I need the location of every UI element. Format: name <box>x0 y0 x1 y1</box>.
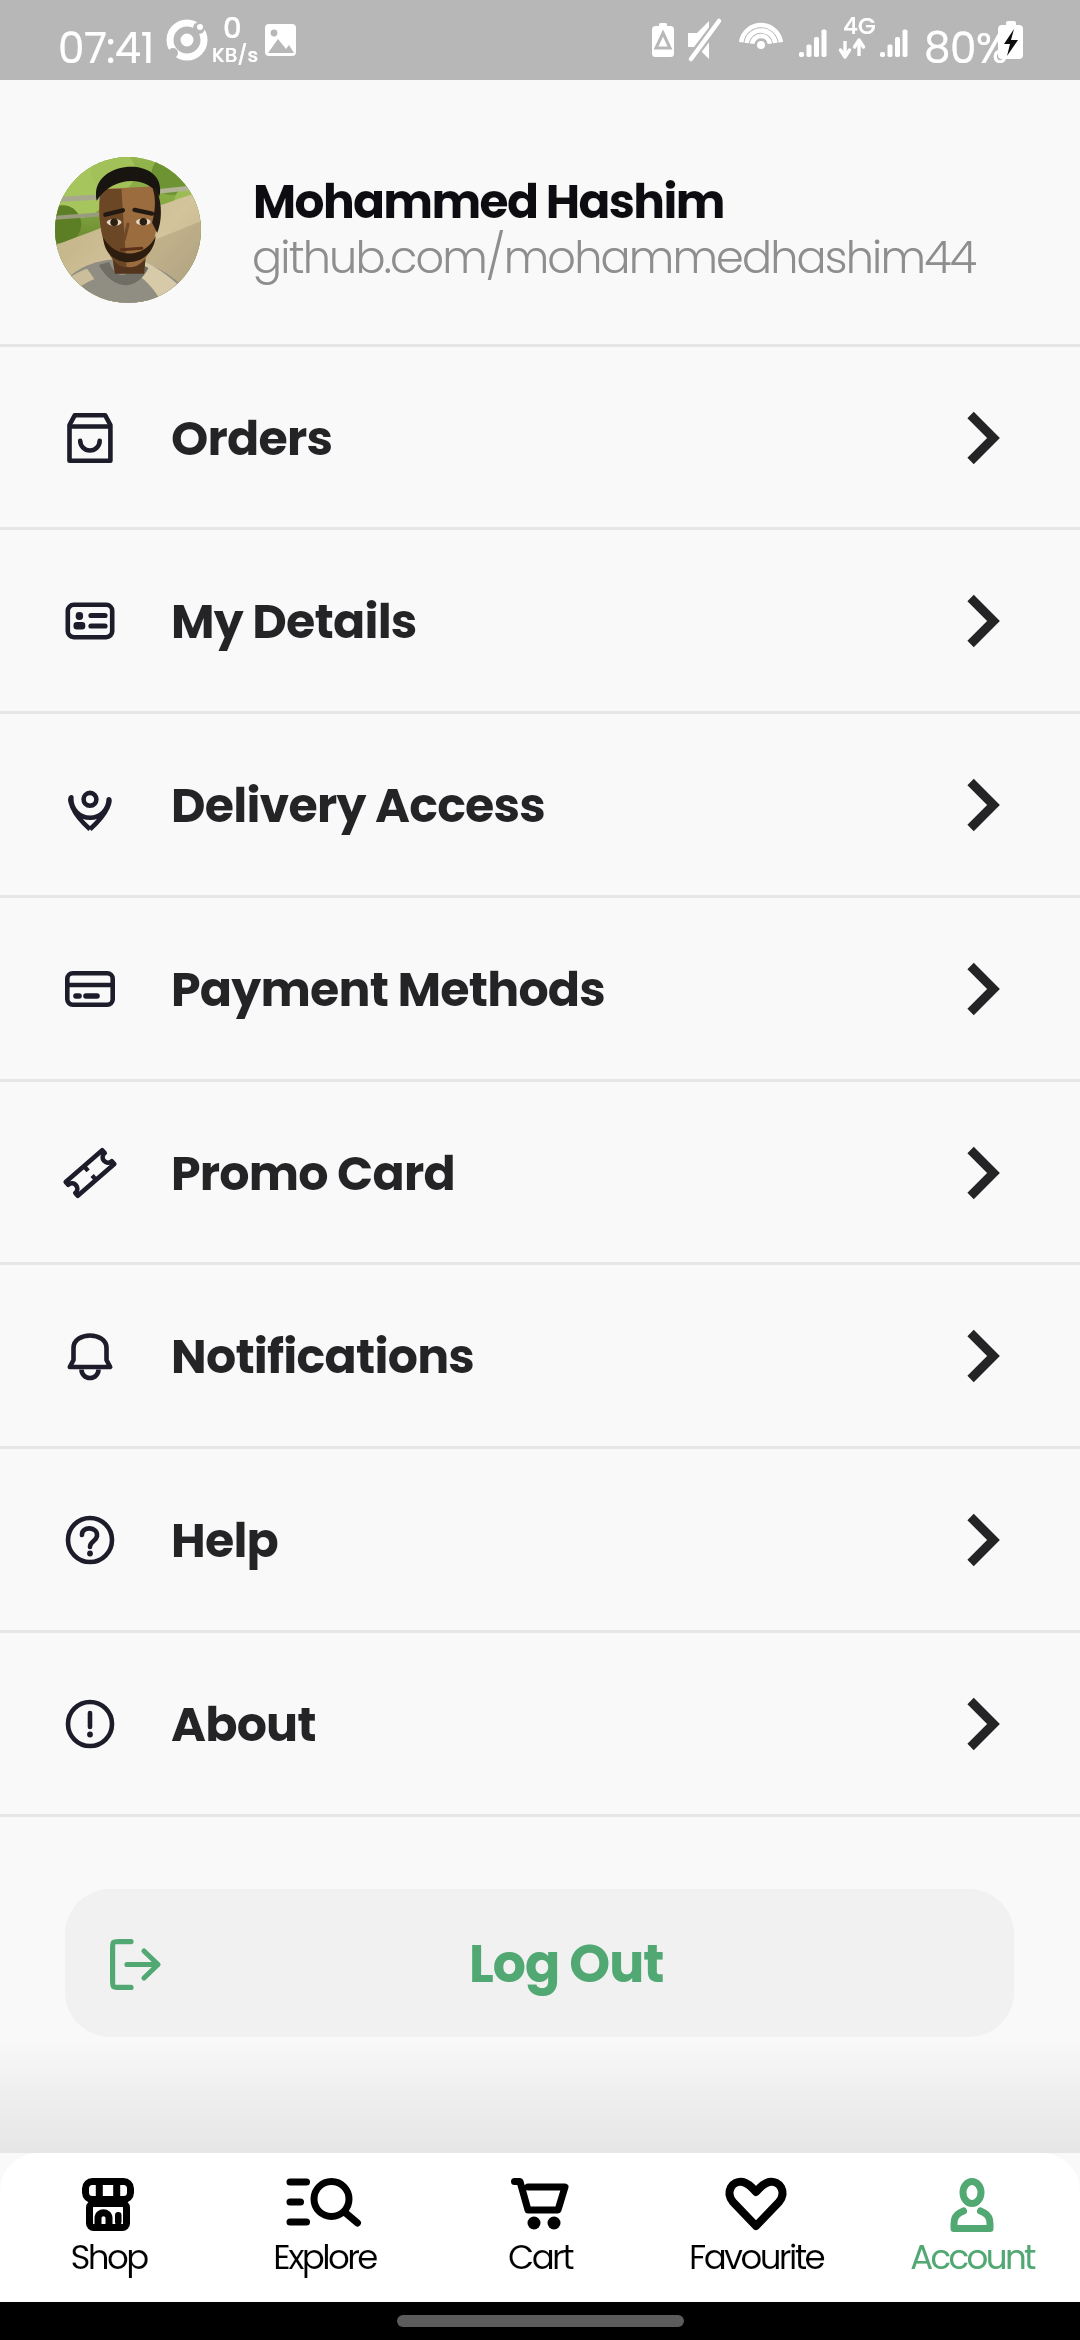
button[interactable]: Help <box>0 1449 1080 1630</box>
button[interactable]: Payment Methods <box>0 898 1080 1079</box>
button[interactable]: Shop <box>0 2153 216 2302</box>
button[interactable]: Favourite <box>648 2153 864 2302</box>
button[interactable]: About <box>0 1633 1080 1814</box>
staticText: Notifications <box>171 1323 475 1389</box>
staticText: 80% <box>924 19 1008 78</box>
staticText: KB/s <box>212 41 259 69</box>
staticText: 07:41 <box>58 19 154 78</box>
button[interactable]: My Details <box>0 530 1080 711</box>
staticText: Account <box>910 2233 1034 2281</box>
staticText: Explore <box>273 2233 376 2281</box>
staticText: My Details <box>171 588 417 654</box>
staticText: Shop <box>70 2233 147 2281</box>
staticText: Favourite <box>689 2233 823 2281</box>
staticText: Cart <box>508 2233 572 2281</box>
staticText: Delivery Access <box>171 772 545 838</box>
staticText: Mohammed Hashim <box>253 169 724 235</box>
staticText: Promo Card <box>171 1140 455 1206</box>
staticText: Orders <box>171 405 333 471</box>
button[interactable]: Account <box>864 2153 1080 2302</box>
staticText: 4G <box>843 10 876 42</box>
button[interactable]: Promo Card <box>0 1082 1080 1263</box>
button[interactable]: Log Out <box>65 1889 1014 2037</box>
staticText: github.com/mohammedhashim44 <box>252 226 976 288</box>
staticText: 0 <box>223 8 242 49</box>
button[interactable]: Explore <box>216 2153 432 2302</box>
button[interactable]: Orders <box>0 347 1080 528</box>
staticText: Log Out <box>469 1927 664 2000</box>
button[interactable]: Delivery Access <box>0 714 1080 895</box>
button[interactable]: Notifications <box>0 1265 1080 1446</box>
staticText: About <box>171 1691 316 1757</box>
staticText: Payment Methods <box>171 956 606 1022</box>
staticText: Help <box>171 1507 279 1573</box>
button[interactable]: Cart <box>432 2153 648 2302</box>
